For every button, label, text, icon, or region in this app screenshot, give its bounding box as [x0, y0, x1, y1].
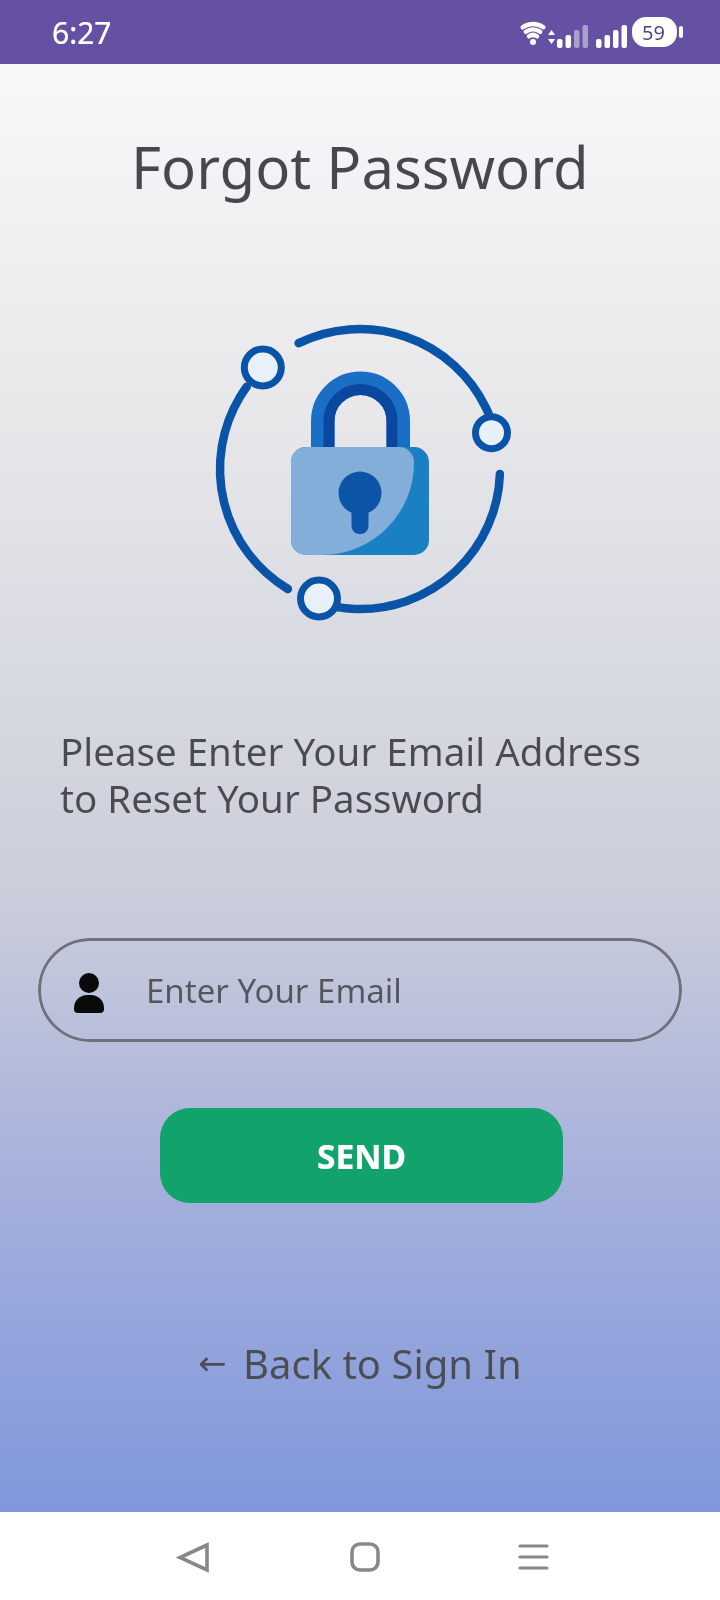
staticText: Forgot Password	[131, 127, 589, 206]
staticText: to Reset Your Password	[60, 772, 484, 824]
staticText: 6:27	[52, 12, 112, 53]
button[interactable]: ←	[0, 1330, 720, 1396]
staticText: Please Enter Your Email Address	[60, 725, 641, 777]
button[interactable]	[325, 1512, 405, 1600]
button[interactable]: SEND	[160, 1108, 563, 1203]
button[interactable]: Enter Your Email	[38, 938, 682, 1042]
staticText: 59	[642, 19, 665, 46]
staticText: ←	[198, 1343, 227, 1383]
staticText: Back to Sign In	[243, 1336, 522, 1390]
staticText: SEND	[317, 1133, 406, 1179]
button[interactable]	[495, 1512, 575, 1600]
button[interactable]	[155, 1512, 235, 1600]
staticText: Enter Your Email	[146, 968, 402, 1013]
